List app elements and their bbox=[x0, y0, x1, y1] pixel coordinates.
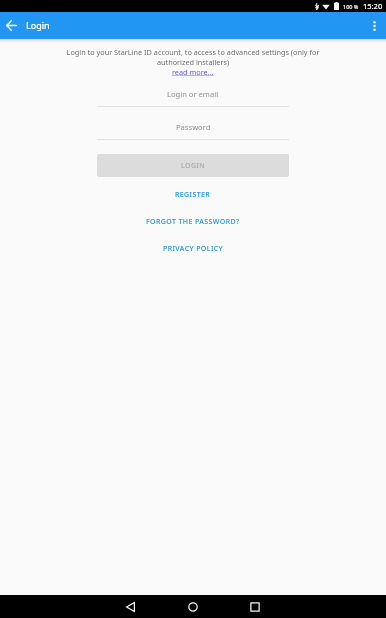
button[interactable]: More options bbox=[362, 12, 386, 39]
button[interactable]: Password bbox=[97, 122, 289, 140]
button[interactable]: Home bbox=[187, 595, 198, 618]
button[interactable]: Back bbox=[0, 12, 23, 39]
staticText: PRIVACY POLICY bbox=[163, 244, 224, 254]
button[interactable]: Back bbox=[125, 595, 136, 618]
button[interactable]: PRIVACY POLICY bbox=[155, 243, 232, 255]
staticText: Password bbox=[176, 122, 211, 132]
button[interactable]: Recents bbox=[249, 595, 260, 618]
button[interactable]: read more... bbox=[172, 67, 214, 77]
staticText: Login or email bbox=[167, 89, 219, 99]
staticText: Login bbox=[26, 19, 50, 31]
button[interactable]: FORGOT THE PASSWORD? bbox=[138, 216, 248, 228]
staticText: FORGOT THE PASSWORD? bbox=[146, 217, 240, 227]
staticText: 100 % bbox=[343, 3, 359, 10]
staticText: REGISTER bbox=[175, 190, 211, 200]
button[interactable]: Login or email bbox=[97, 89, 289, 107]
staticText: 15:20 bbox=[363, 1, 383, 11]
button[interactable]: LOGIN bbox=[97, 154, 289, 177]
staticText: LOGIN bbox=[181, 161, 206, 171]
button[interactable]: REGISTER bbox=[167, 189, 219, 201]
staticText: Login to your StarLine ID account, to ac… bbox=[64, 47, 322, 67]
